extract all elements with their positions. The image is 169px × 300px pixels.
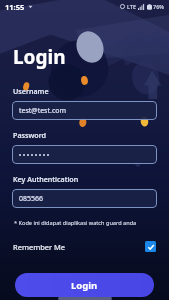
staticText: 76%	[153, 3, 164, 10]
staticText: Password	[13, 130, 47, 140]
button[interactable]: Login	[15, 273, 154, 297]
button[interactable]: test@test.com	[12, 101, 157, 120]
staticText: 11:55	[5, 2, 25, 12]
staticText: Key Authentication	[13, 174, 79, 184]
other: Remember Me checkbox	[145, 241, 156, 252]
staticText: 085566	[19, 194, 44, 204]
staticText: test@test.com	[19, 106, 67, 116]
staticText: Login	[13, 44, 66, 70]
button[interactable]	[12, 145, 157, 164]
staticText: LTE	[127, 3, 136, 10]
staticText: Username	[13, 86, 49, 96]
staticText: * Kode ini didapat diaplikasi watch guar…	[14, 219, 137, 227]
button[interactable]: Remember Me	[13, 241, 156, 252]
staticText: Remember Me	[13, 242, 66, 252]
staticText: Login	[71, 279, 98, 292]
button[interactable]: 085566	[12, 189, 157, 208]
